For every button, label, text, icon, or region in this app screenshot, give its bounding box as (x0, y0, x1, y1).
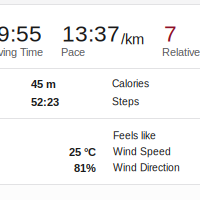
staticText: /km (121, 31, 144, 47)
button[interactable]: Wind Speed 25 °C (0, 142, 200, 158)
staticText: 13:37 (62, 21, 120, 46)
button[interactable]: Relative Effort (158, 5, 200, 68)
staticText: Wind Direction (113, 162, 180, 173)
staticText: Pace (61, 46, 85, 58)
button[interactable]: Calories 45 m (0, 72, 200, 90)
staticText: 45 m (31, 78, 56, 90)
staticText: Moving Time (0, 46, 43, 58)
staticText: 52:23 (31, 96, 59, 108)
staticText: Relative Effort (162, 46, 200, 58)
staticText: Calories (112, 78, 149, 89)
staticText: 9:55 (0, 21, 42, 46)
staticText: 25 °C (69, 146, 96, 158)
staticText: 7 (164, 21, 177, 46)
button[interactable]: Wind Direction 81% (0, 158, 200, 174)
button[interactable]: Steps 52:23 (0, 92, 200, 110)
button[interactable]: Moving Time (0, 5, 40, 68)
staticText: 81% (74, 162, 96, 174)
button[interactable]: Pace (58, 5, 158, 68)
staticText: Feels like (113, 130, 156, 141)
button[interactable]: Feels like (0, 125, 200, 141)
staticText: Steps (112, 96, 139, 107)
staticText: Wind Speed (113, 146, 171, 157)
